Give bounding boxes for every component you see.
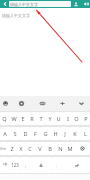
staticText: H bbox=[53, 130, 58, 138]
button[interactable]: F bbox=[30, 127, 40, 140]
staticText: K bbox=[73, 130, 77, 138]
staticText: 。 bbox=[55, 163, 60, 168]
button[interactable]: Download bbox=[71, 0, 81, 8]
button[interactable]: T bbox=[36, 112, 45, 125]
button[interactable]: ， bbox=[20, 157, 30, 173]
button[interactable]: 请输入中文文字 bbox=[9, 1, 71, 7]
button[interactable]: J bbox=[60, 127, 70, 140]
button[interactable]: 中 bbox=[0, 157, 10, 173]
button[interactable] bbox=[30, 157, 52, 173]
button[interactable]: S bbox=[10, 127, 20, 140]
button[interactable]: G bbox=[40, 127, 50, 140]
staticText: E bbox=[21, 115, 25, 123]
button[interactable]: A bbox=[0, 127, 10, 140]
button[interactable] bbox=[62, 157, 90, 173]
button[interactable]: Emoji bbox=[0, 96, 11, 111]
button[interactable]: N bbox=[55, 142, 65, 155]
button[interactable]: Z bbox=[7, 142, 16, 155]
staticText: X bbox=[19, 145, 23, 153]
staticText: U bbox=[56, 115, 61, 123]
button[interactable]: Hide keyboard bbox=[72, 96, 90, 111]
button[interactable] bbox=[75, 142, 90, 155]
staticText: R bbox=[30, 115, 34, 123]
button[interactable]: Resize keyboard bbox=[53, 96, 72, 111]
staticText: D bbox=[23, 130, 28, 138]
button[interactable]: O bbox=[72, 112, 81, 125]
staticText: F bbox=[34, 130, 37, 138]
button[interactable]: K bbox=[70, 127, 80, 140]
staticText: N bbox=[58, 145, 63, 153]
button[interactable]: V bbox=[35, 142, 45, 155]
button[interactable]: Y bbox=[45, 112, 54, 125]
button[interactable]: Q bbox=[0, 112, 9, 125]
button[interactable]: 123 bbox=[10, 157, 20, 173]
button[interactable]: W bbox=[9, 112, 18, 125]
staticText: 请输入中文文字 bbox=[10, 2, 38, 7]
button[interactable]: Sound bbox=[81, 0, 90, 8]
button[interactable]: M bbox=[65, 142, 75, 155]
staticText: 符号 bbox=[0, 147, 7, 151]
staticText: O bbox=[74, 115, 79, 123]
staticText: Z bbox=[10, 145, 14, 153]
staticText: 123 bbox=[11, 162, 19, 168]
button[interactable]: C bbox=[25, 142, 35, 155]
button[interactable]: I bbox=[63, 112, 72, 125]
staticText: S bbox=[13, 130, 17, 138]
staticText: L bbox=[84, 130, 87, 138]
staticText: 请输入中文文字 bbox=[2, 13, 30, 18]
button[interactable]: B bbox=[45, 142, 55, 155]
button[interactable]: L bbox=[80, 127, 90, 140]
staticText: M bbox=[67, 145, 73, 153]
button[interactable]: X bbox=[16, 142, 25, 155]
staticText: Y bbox=[48, 115, 52, 123]
staticText: A bbox=[3, 130, 7, 138]
button[interactable]: Settings bbox=[11, 96, 32, 111]
staticText: G bbox=[43, 130, 48, 138]
button[interactable]: Back bbox=[0, 0, 9, 8]
button[interactable]: U bbox=[54, 112, 63, 125]
button[interactable]: E bbox=[18, 112, 27, 125]
staticText: I bbox=[67, 115, 69, 123]
button[interactable]: Keyboard layout bbox=[32, 96, 53, 111]
staticText: 中 bbox=[3, 162, 8, 168]
button[interactable]: D bbox=[20, 127, 30, 140]
staticText: C bbox=[28, 145, 32, 153]
staticText: Q bbox=[2, 115, 7, 123]
staticText: V bbox=[38, 145, 42, 153]
staticText: B bbox=[48, 145, 52, 153]
button[interactable]: P bbox=[81, 112, 90, 125]
staticText: J bbox=[64, 130, 66, 138]
staticText: T bbox=[39, 115, 43, 123]
button[interactable]: H bbox=[50, 127, 60, 140]
button[interactable]: 符号 bbox=[0, 142, 7, 155]
staticText: ， bbox=[23, 163, 28, 168]
staticText: P bbox=[84, 115, 88, 123]
button[interactable]: R bbox=[27, 112, 36, 125]
staticText: W bbox=[11, 115, 17, 123]
